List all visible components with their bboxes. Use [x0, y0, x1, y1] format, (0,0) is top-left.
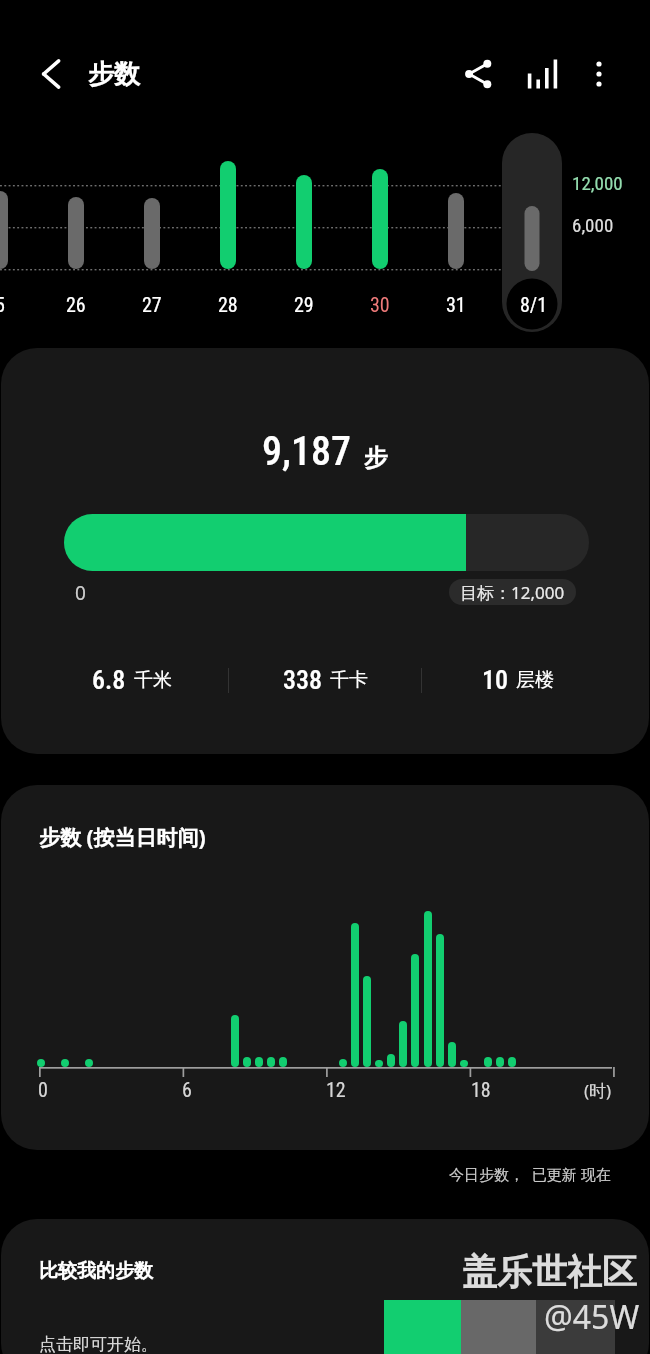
button[interactable]: 338 — [229, 658, 421, 702]
staticText: 12,000 — [572, 172, 623, 194]
button[interactable]: Back — [27, 50, 74, 97]
button[interactable] — [64, 514, 589, 571]
button[interactable]: 比较我的步数 — [1, 1219, 649, 1354]
staticText: 31 — [446, 293, 466, 316]
staticText: 8/1 — [520, 293, 548, 316]
button[interactable]: 目标：12,000 — [449, 579, 576, 605]
staticText: 0 — [75, 580, 86, 606]
staticText: 层楼 — [516, 668, 554, 692]
staticText: 目标：12,000 — [460, 581, 565, 604]
staticText: 千卡 — [330, 668, 368, 692]
staticText: 12 — [326, 1078, 346, 1101]
button[interactable]: More options — [575, 50, 623, 98]
staticText: 18 — [471, 1078, 491, 1101]
staticText: 27 — [142, 293, 162, 316]
staticText: 5 — [0, 293, 5, 316]
staticText: 今日步数， 已更新 现在 — [449, 1164, 611, 1184]
button[interactable]: Share — [455, 50, 503, 98]
button[interactable]: 9,187 — [1, 348, 649, 754]
staticText: 338 — [283, 665, 322, 695]
staticText: 6.8 — [92, 665, 126, 695]
staticText: 盖乐世社区 — [462, 1250, 637, 1294]
button[interactable]: 5 — [0, 130, 650, 348]
staticText: @45W — [544, 1295, 640, 1339]
staticText: 26 — [66, 293, 86, 316]
staticText: 比较我的步数 — [39, 1259, 153, 1283]
staticText: 30 — [370, 293, 390, 316]
button[interactable]: 10 — [422, 658, 614, 702]
staticText: 9,187 — [262, 428, 351, 475]
staticText: 点击即可开始。 — [39, 1334, 158, 1354]
staticText: 10 — [482, 665, 508, 695]
staticText: 28 — [218, 293, 238, 316]
staticText: 步 — [364, 443, 388, 473]
button[interactable]: 6.8 — [36, 658, 228, 702]
button[interactable]: Chart view — [517, 50, 565, 98]
staticText: 步数 (按当日时间) — [39, 823, 206, 852]
staticText: 步数 — [88, 58, 140, 91]
button[interactable]: 步数 (按当日时间) — [1, 785, 649, 1150]
staticText: 0 — [38, 1078, 48, 1101]
staticText: (时) — [584, 1079, 612, 1102]
staticText: 29 — [294, 293, 314, 316]
staticText: 6 — [182, 1078, 192, 1101]
staticText: 6,000 — [572, 214, 614, 236]
staticText: 千米 — [134, 668, 172, 692]
